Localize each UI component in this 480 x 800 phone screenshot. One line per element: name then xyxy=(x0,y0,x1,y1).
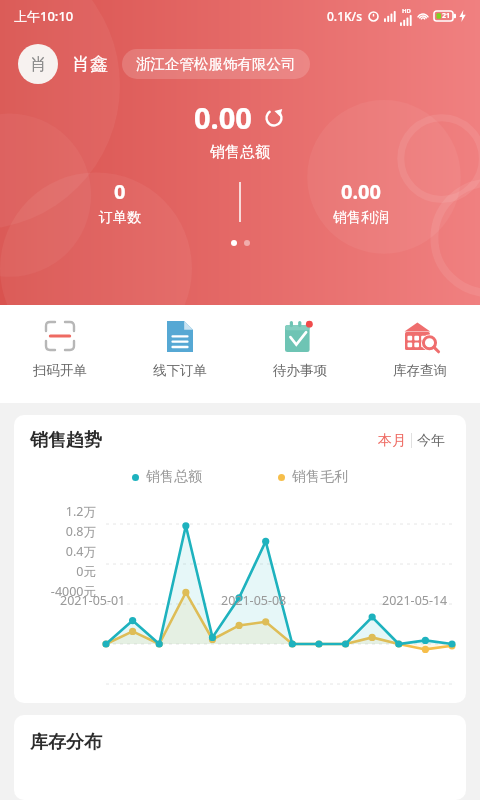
staticText: 销售总额 xyxy=(210,143,270,162)
staticText: 0.4万 xyxy=(14,543,96,560)
staticText: 线下订单 xyxy=(153,362,207,379)
staticText: 销售利润 xyxy=(333,209,389,227)
button[interactable]: 扫码开单 xyxy=(0,319,120,379)
button[interactable]: 本月 xyxy=(373,430,411,452)
staticText: 销售毛利 xyxy=(292,468,348,486)
staticText: 2021-05-01 xyxy=(60,592,126,609)
button[interactable]: 库存查询 xyxy=(360,319,480,379)
button[interactable]: 0 xyxy=(0,178,239,227)
staticText: 0 xyxy=(114,178,126,205)
staticText: 今年 xyxy=(417,432,445,450)
staticText: 1.2万 xyxy=(14,503,96,520)
button[interactable]: 线下订单 xyxy=(120,319,240,379)
staticText: 肖 xyxy=(30,54,47,75)
staticText: 0.00 xyxy=(194,98,252,137)
staticText: 0.1K/s xyxy=(327,8,363,24)
staticText: 21 xyxy=(442,11,451,21)
staticText: 库存查询 xyxy=(393,362,447,379)
staticText: 2021-05-14 xyxy=(382,592,448,609)
staticText: 本月 xyxy=(378,432,406,450)
staticText: 销售趋势 xyxy=(30,429,102,452)
button[interactable]: 今年 xyxy=(412,430,450,452)
staticText: 销售总额 xyxy=(146,468,202,486)
staticText: 0.00 xyxy=(341,178,381,205)
staticText: 库存分布 xyxy=(30,731,102,754)
staticText: 0.8万 xyxy=(14,523,96,540)
staticText: 扫码开单 xyxy=(33,362,87,379)
staticText: HD xyxy=(402,7,411,15)
staticText: 上午10:10 xyxy=(14,7,74,25)
staticText: -4000元 xyxy=(14,583,96,600)
staticText: 订单数 xyxy=(99,209,141,227)
button[interactable]: 待办事项 xyxy=(240,319,360,379)
button[interactable]: 刷新 xyxy=(262,106,286,130)
button[interactable]: 0.00 xyxy=(241,178,480,227)
button[interactable]: 肖 xyxy=(18,44,58,84)
staticText: 0元 xyxy=(14,563,96,580)
staticText: 2021-05-08 xyxy=(221,592,287,609)
button[interactable]: 浙江企管松服饰有限公司 xyxy=(122,49,310,79)
staticText: 浙江企管松服饰有限公司 xyxy=(136,55,296,73)
staticText: 待办事项 xyxy=(273,362,327,379)
staticText: 肖鑫 xyxy=(72,53,108,76)
